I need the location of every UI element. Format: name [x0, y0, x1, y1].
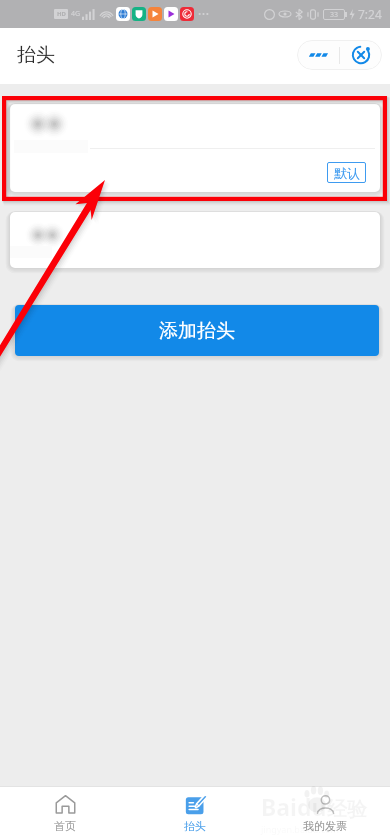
- staticText: HD: [57, 10, 66, 18]
- staticText: 我的发票: [303, 819, 347, 833]
- staticText: 抬头: [17, 43, 55, 67]
- button[interactable]: 我的发票: [260, 787, 390, 840]
- button[interactable]: 首页: [0, 787, 130, 840]
- staticText: 首页: [54, 819, 76, 833]
- staticText: Baidu: [261, 791, 327, 822]
- button[interactable]: 添加抬头: [15, 305, 379, 356]
- staticText: 抬头: [184, 819, 206, 833]
- button[interactable]: 默认: [327, 162, 366, 183]
- staticText: 添加抬头: [159, 319, 235, 343]
- staticText: 经验: [327, 797, 367, 822]
- staticText: 4G: [71, 9, 81, 19]
- staticText: 默认: [334, 165, 360, 181]
- button[interactable]: [10, 212, 380, 268]
- button[interactable]: Close: [340, 40, 382, 70]
- button[interactable]: 抬头: [130, 787, 260, 840]
- staticText: 33: [330, 10, 339, 20]
- button[interactable]: 默认: [10, 104, 380, 192]
- staticText: 7:24: [358, 6, 382, 22]
- staticText: jingyan.baidu.com: [261, 823, 339, 835]
- button[interactable]: More options: [297, 40, 339, 70]
